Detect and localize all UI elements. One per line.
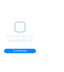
staticText: secondary text line xyxy=(7,39,32,42)
button[interactable]: Continue xyxy=(4,49,36,53)
staticText: Some title text here xyxy=(6,35,33,38)
staticText: Continue xyxy=(13,49,27,53)
